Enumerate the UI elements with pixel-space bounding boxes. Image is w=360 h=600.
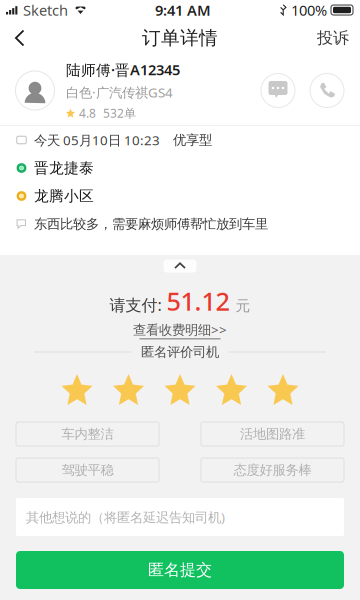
staticText: 匿名评价司机	[141, 344, 219, 360]
staticText: 陆师傅·晋A12345	[66, 60, 180, 79]
staticText: 龙腾小区	[34, 187, 94, 205]
button[interactable]: Rate	[164, 374, 195, 405]
staticText: 活地图路准	[240, 426, 305, 442]
staticText: 优享型	[173, 132, 212, 148]
staticText: 订单详情	[142, 26, 218, 49]
staticText: 今天 05月10日 10:23	[34, 131, 160, 149]
staticText: 其他想说的（将匿名延迟告知司机)	[26, 508, 225, 526]
button[interactable]: Collapse	[0, 258, 360, 274]
staticText: 匿名提交	[148, 560, 212, 580]
button[interactable]: 态度好服务棒	[201, 458, 344, 482]
staticText: 查看收费明细>>	[133, 321, 227, 338]
button[interactable]: 驾驶平稳	[16, 458, 159, 482]
button[interactable]: Rate	[113, 374, 144, 405]
staticText: 东西比较多，需要麻烦师傅帮忙放到车里	[34, 216, 268, 232]
button[interactable]: 查看收费明细>>	[133, 312, 227, 337]
button[interactable]: 匿名提交	[16, 551, 344, 589]
staticText: 9:41 AM	[155, 0, 211, 20]
button[interactable]: Call driver	[307, 70, 347, 110]
button[interactable]: 其他想说的（将匿名延迟告知司机)	[16, 498, 344, 536]
button[interactable]: Rate	[267, 374, 298, 405]
staticText: Sketch	[23, 0, 68, 20]
button[interactable]: 投诉	[306, 20, 360, 56]
button[interactable]: 活地图路准	[201, 422, 344, 446]
staticText: 白色·广汽传祺GS4	[66, 83, 173, 101]
staticText: 投诉	[317, 28, 349, 48]
staticText: 4.8	[79, 105, 96, 121]
staticText: 态度好服务棒	[233, 462, 311, 478]
staticText: 元	[235, 297, 250, 315]
staticText: 车内整洁	[61, 426, 113, 442]
staticText: 100%	[291, 0, 327, 20]
staticText: 驾驶平稳	[61, 462, 113, 478]
button[interactable]: 车内整洁	[16, 422, 159, 446]
button[interactable]: Rate	[61, 374, 92, 405]
button[interactable]: Back	[0, 20, 40, 56]
button[interactable]: Message driver	[258, 70, 298, 110]
staticText: 532单	[103, 105, 136, 121]
staticText: 晋龙捷泰	[34, 159, 94, 177]
staticText: 请支付:	[109, 294, 161, 315]
button[interactable]: Rate	[216, 374, 247, 405]
staticText: 51.12	[166, 284, 229, 318]
